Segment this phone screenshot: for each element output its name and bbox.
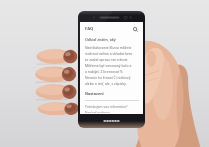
staticText: Nainštalovanie Eluvia môžete [85, 45, 132, 50]
staticText: Odkiaľ zistím, aký [85, 37, 116, 42]
button[interactable]: Search [131, 25, 139, 33]
staticText: Napísať podporu [85, 111, 111, 113]
button[interactable]: Potrebujem viac informácie? [85, 104, 139, 110]
staticText: Nastavení [85, 91, 104, 96]
staticText: a nabíjať. Z licencovať % [85, 69, 123, 74]
staticText: Nesmie ku ihnosť Či niektorý [85, 75, 131, 80]
staticText: alebo o sieť, ale, s zápisky. [85, 81, 127, 86]
staticText: FAQ [85, 26, 94, 32]
staticText: Potrebujem viac informácie? [85, 105, 128, 109]
staticText: Môžeme byť venovaný bolo a Bola [85, 63, 139, 68]
button[interactable]: FAQ [85, 25, 94, 33]
staticText: stiahnuť online a vkladať tieto [85, 51, 133, 56]
button[interactable]: Napísať podporu [85, 110, 139, 114]
staticText: to zaslať opravu ten návrat [85, 57, 128, 62]
